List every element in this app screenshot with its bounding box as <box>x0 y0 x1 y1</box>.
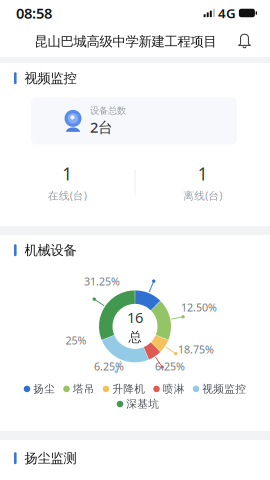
staticText: 在线(台) <box>48 188 87 203</box>
staticText: 设备总数 <box>90 105 126 116</box>
staticText: 6.25% <box>94 359 124 373</box>
staticText: 25% <box>65 333 86 347</box>
staticText: 扬尘 <box>33 382 55 395</box>
staticText: 6.25% <box>155 359 185 373</box>
staticText: 塔吊 <box>73 382 95 395</box>
staticText: 08:58 <box>16 3 52 23</box>
staticText: 升降机 <box>112 382 145 395</box>
staticText: 1 <box>198 162 208 185</box>
staticText: 16 <box>127 307 143 327</box>
staticText: 31.25% <box>84 274 120 288</box>
staticText: 12.50% <box>181 300 217 314</box>
staticText: 昆山巴城高级中学新建工程项目 <box>34 33 216 50</box>
staticText: 喷淋 <box>163 382 185 395</box>
staticText: 1 <box>62 162 72 185</box>
staticText: 总 <box>128 329 141 345</box>
button[interactable]: 通知 <box>229 29 252 53</box>
staticText: 离线(台) <box>183 188 222 203</box>
staticText: 视频监控 <box>202 382 246 395</box>
staticText: 2台 <box>90 117 113 137</box>
staticText: 视频监控 <box>25 70 77 86</box>
staticText: 18.75% <box>178 342 214 356</box>
staticText: 深基坑 <box>126 397 159 411</box>
staticText: 机械设备 <box>25 242 77 258</box>
staticText: 4G <box>218 4 236 22</box>
staticText: 扬尘监测 <box>25 450 77 466</box>
